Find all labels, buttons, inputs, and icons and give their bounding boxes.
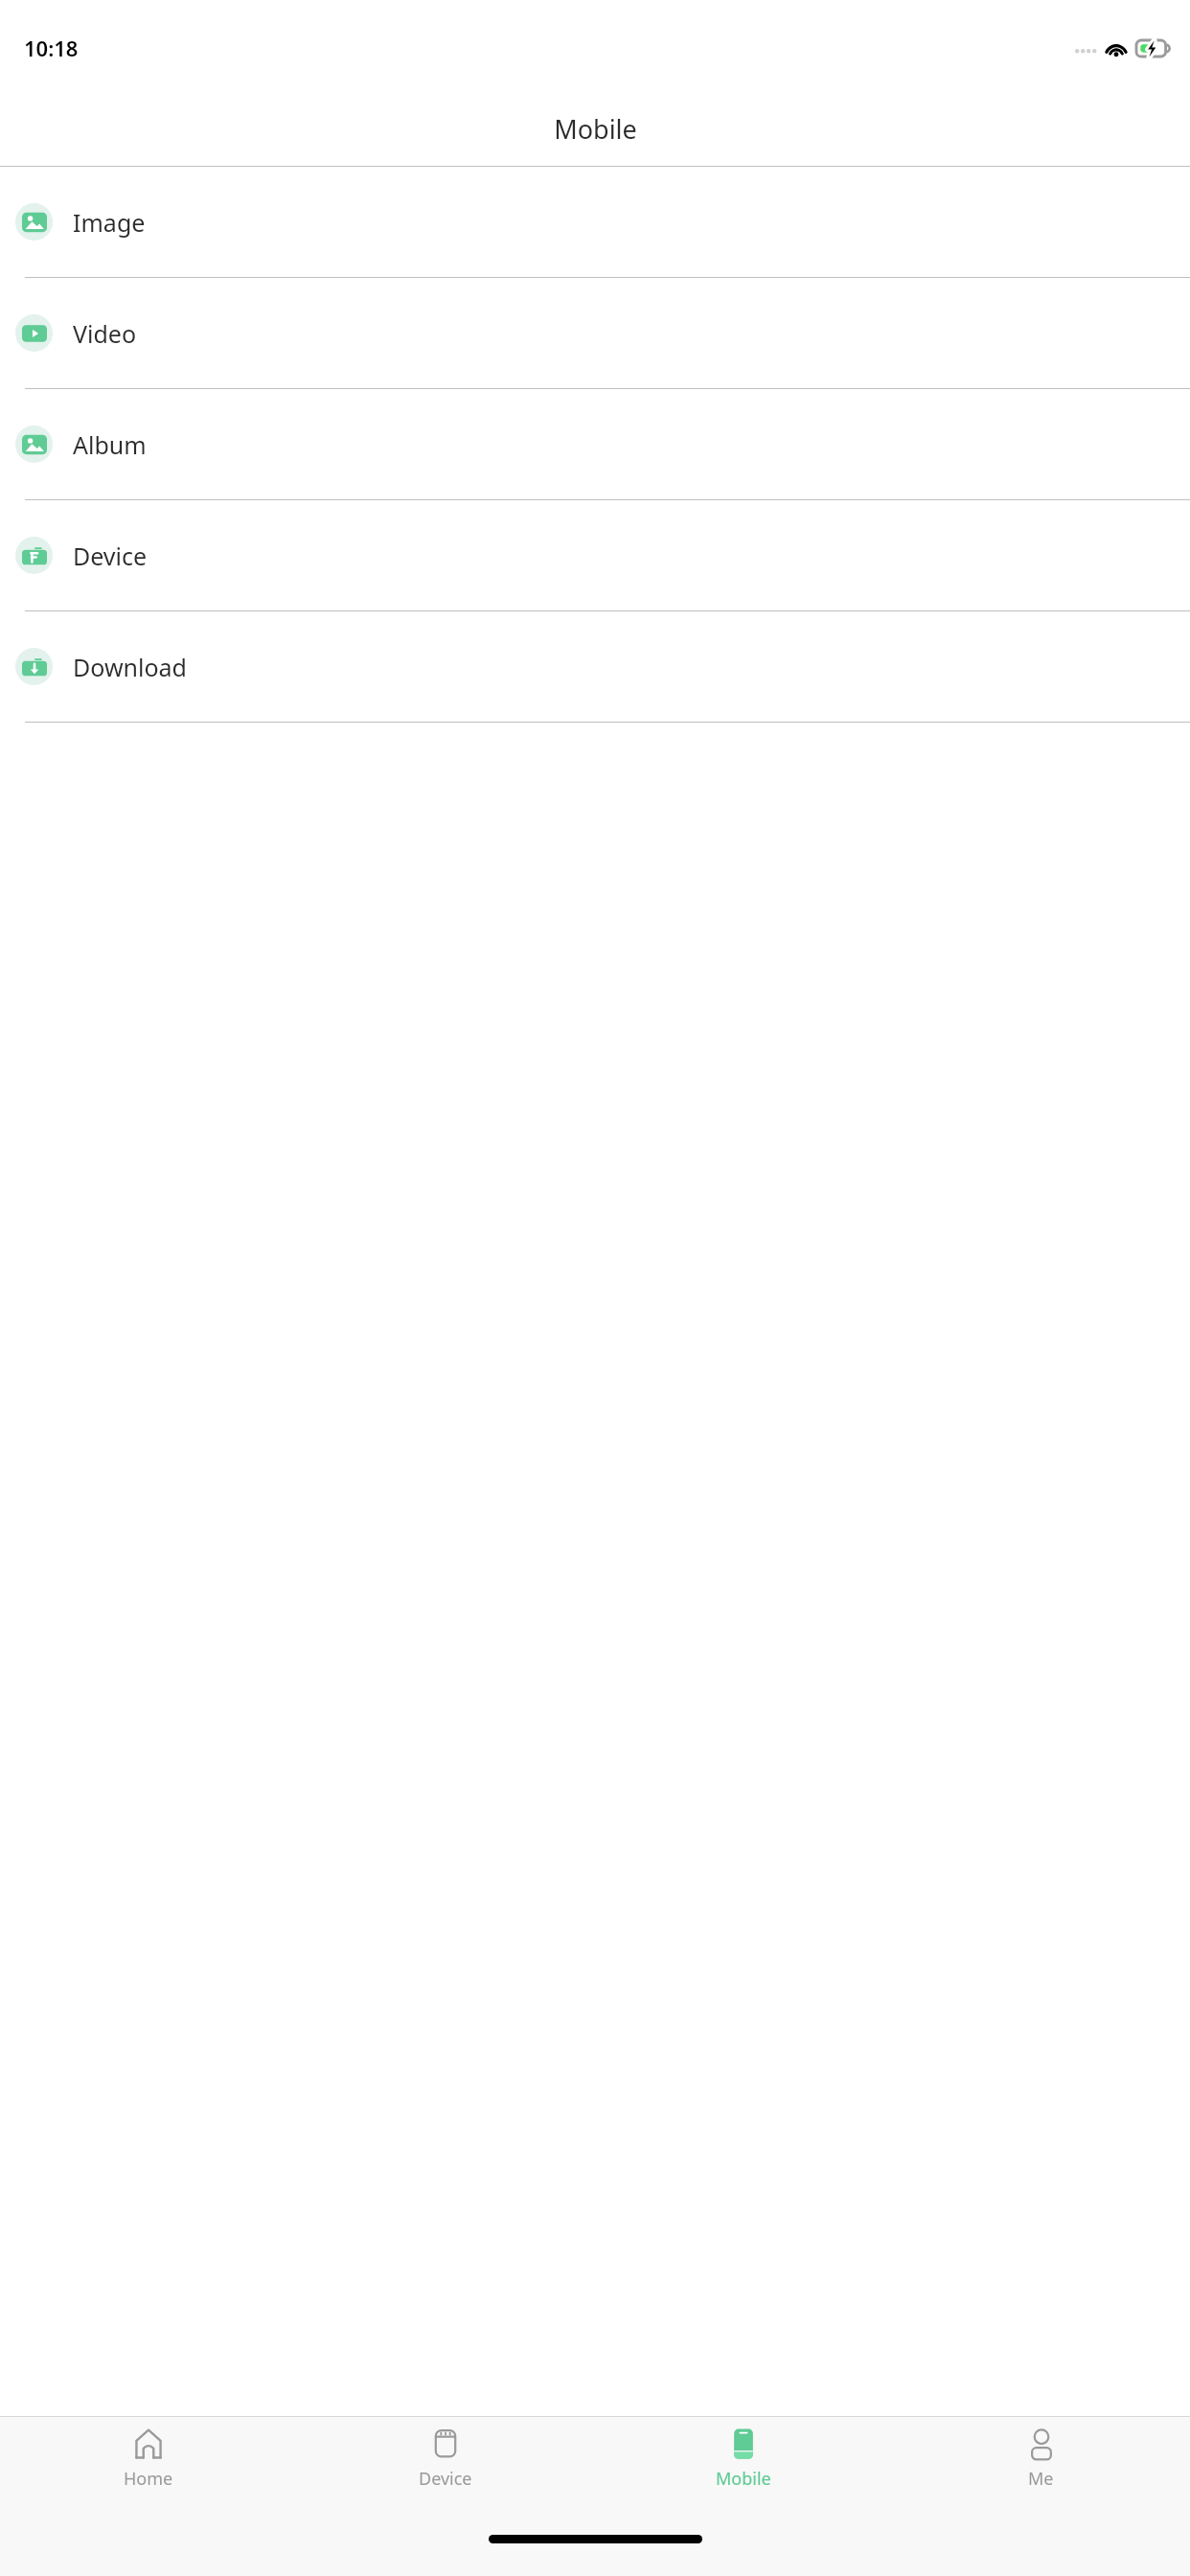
button[interactable]: Device (0, 500, 1190, 610)
staticText: Home (124, 2467, 173, 2491)
staticText: Image (73, 206, 146, 239)
staticText: Mobile (554, 111, 637, 147)
staticText: Download (73, 651, 187, 683)
button[interactable]: Album (0, 389, 1190, 499)
button[interactable]: Download (0, 611, 1190, 722)
button[interactable]: Image (0, 167, 1190, 277)
button[interactable]: Me (892, 2417, 1190, 2511)
staticText: Album (73, 428, 147, 461)
staticText: Device (73, 540, 148, 572)
button[interactable]: Device (297, 2417, 594, 2511)
staticText: Me (1028, 2467, 1054, 2491)
staticText: Video (73, 317, 137, 350)
staticText: 10:18 (24, 34, 79, 62)
staticText: Device (419, 2467, 472, 2491)
button[interactable]: Home (0, 2417, 297, 2511)
button[interactable]: Mobile (594, 2417, 892, 2511)
staticText: Mobile (716, 2467, 771, 2491)
button[interactable]: Video (0, 278, 1190, 388)
